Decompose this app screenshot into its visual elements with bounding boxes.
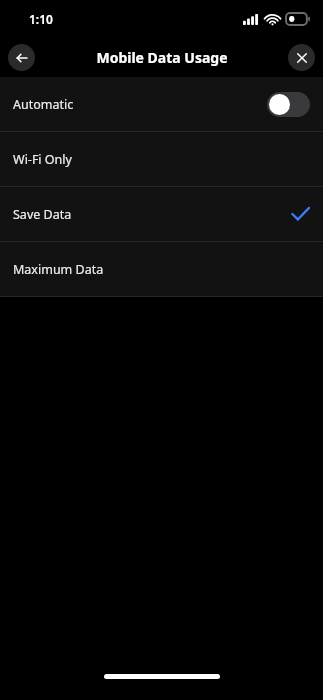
button[interactable]: Automatic toggle: [267, 92, 310, 117]
button[interactable]: Wi-Fi Only: [0, 132, 323, 186]
button[interactable]: Save Data: [0, 187, 323, 241]
staticText: Save Data: [13, 206, 72, 223]
staticText: Maximum Data: [13, 261, 104, 278]
staticText: 1:10: [29, 11, 53, 27]
staticText: Wi-Fi Only: [13, 151, 72, 168]
button[interactable]: Automatic: [0, 77, 323, 131]
staticText: Mobile Data Usage: [96, 48, 228, 67]
button[interactable]: Close: [288, 44, 315, 71]
staticText: Automatic: [13, 96, 74, 113]
button[interactable]: Back: [8, 44, 35, 71]
button[interactable]: Maximum Data: [0, 242, 323, 296]
